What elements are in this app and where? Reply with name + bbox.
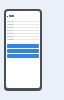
button[interactable]: [7, 26, 39, 28]
button[interactable]: Action: [7, 54, 39, 58]
button[interactable]: [7, 23, 39, 25]
button[interactable]: Action: [7, 49, 39, 53]
button[interactable]: [7, 35, 39, 37]
button[interactable]: [7, 32, 39, 34]
button[interactable]: [7, 15, 39, 17]
button[interactable]: [7, 38, 39, 40]
button[interactable]: [7, 20, 39, 22]
button[interactable]: Action: [7, 44, 39, 48]
button[interactable]: [7, 29, 39, 31]
